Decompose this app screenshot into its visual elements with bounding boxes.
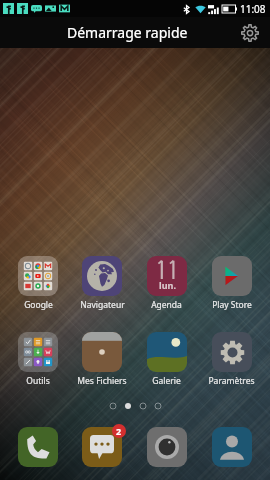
- button[interactable]: Contacts: [199, 427, 264, 467]
- staticText: Démarrage rapide: [67, 23, 188, 42]
- staticText: Paramètres: [208, 375, 255, 387]
- staticText: lun.: [159, 279, 176, 291]
- staticText: Google: [24, 299, 53, 311]
- staticText: Galerie: [152, 375, 181, 387]
- staticText: 2: [116, 425, 122, 437]
- button[interactable]: lun.: [134, 256, 199, 311]
- button[interactable]: Téléphone: [6, 427, 70, 467]
- staticText: Agenda: [151, 299, 182, 311]
- button[interactable]: Google: [6, 256, 70, 311]
- button[interactable]: Paramètres: [199, 332, 264, 387]
- staticText: Navigateur: [80, 299, 125, 311]
- button[interactable]: Paramètres: [239, 22, 260, 43]
- staticText: Outils: [26, 375, 50, 387]
- button[interactable]: Mes Fichiers: [70, 332, 134, 387]
- button[interactable]: Outils: [6, 332, 70, 387]
- button[interactable]: Messages: [70, 427, 134, 467]
- staticText: 11:08: [240, 2, 266, 16]
- staticText: Mes Fichiers: [77, 375, 127, 387]
- staticText: Play Store: [212, 299, 252, 311]
- button[interactable]: Navigateur: [70, 256, 134, 311]
- button[interactable]: Appareil photo: [134, 427, 199, 467]
- button[interactable]: Galerie: [134, 332, 199, 387]
- button[interactable]: Play Store: [199, 256, 264, 311]
